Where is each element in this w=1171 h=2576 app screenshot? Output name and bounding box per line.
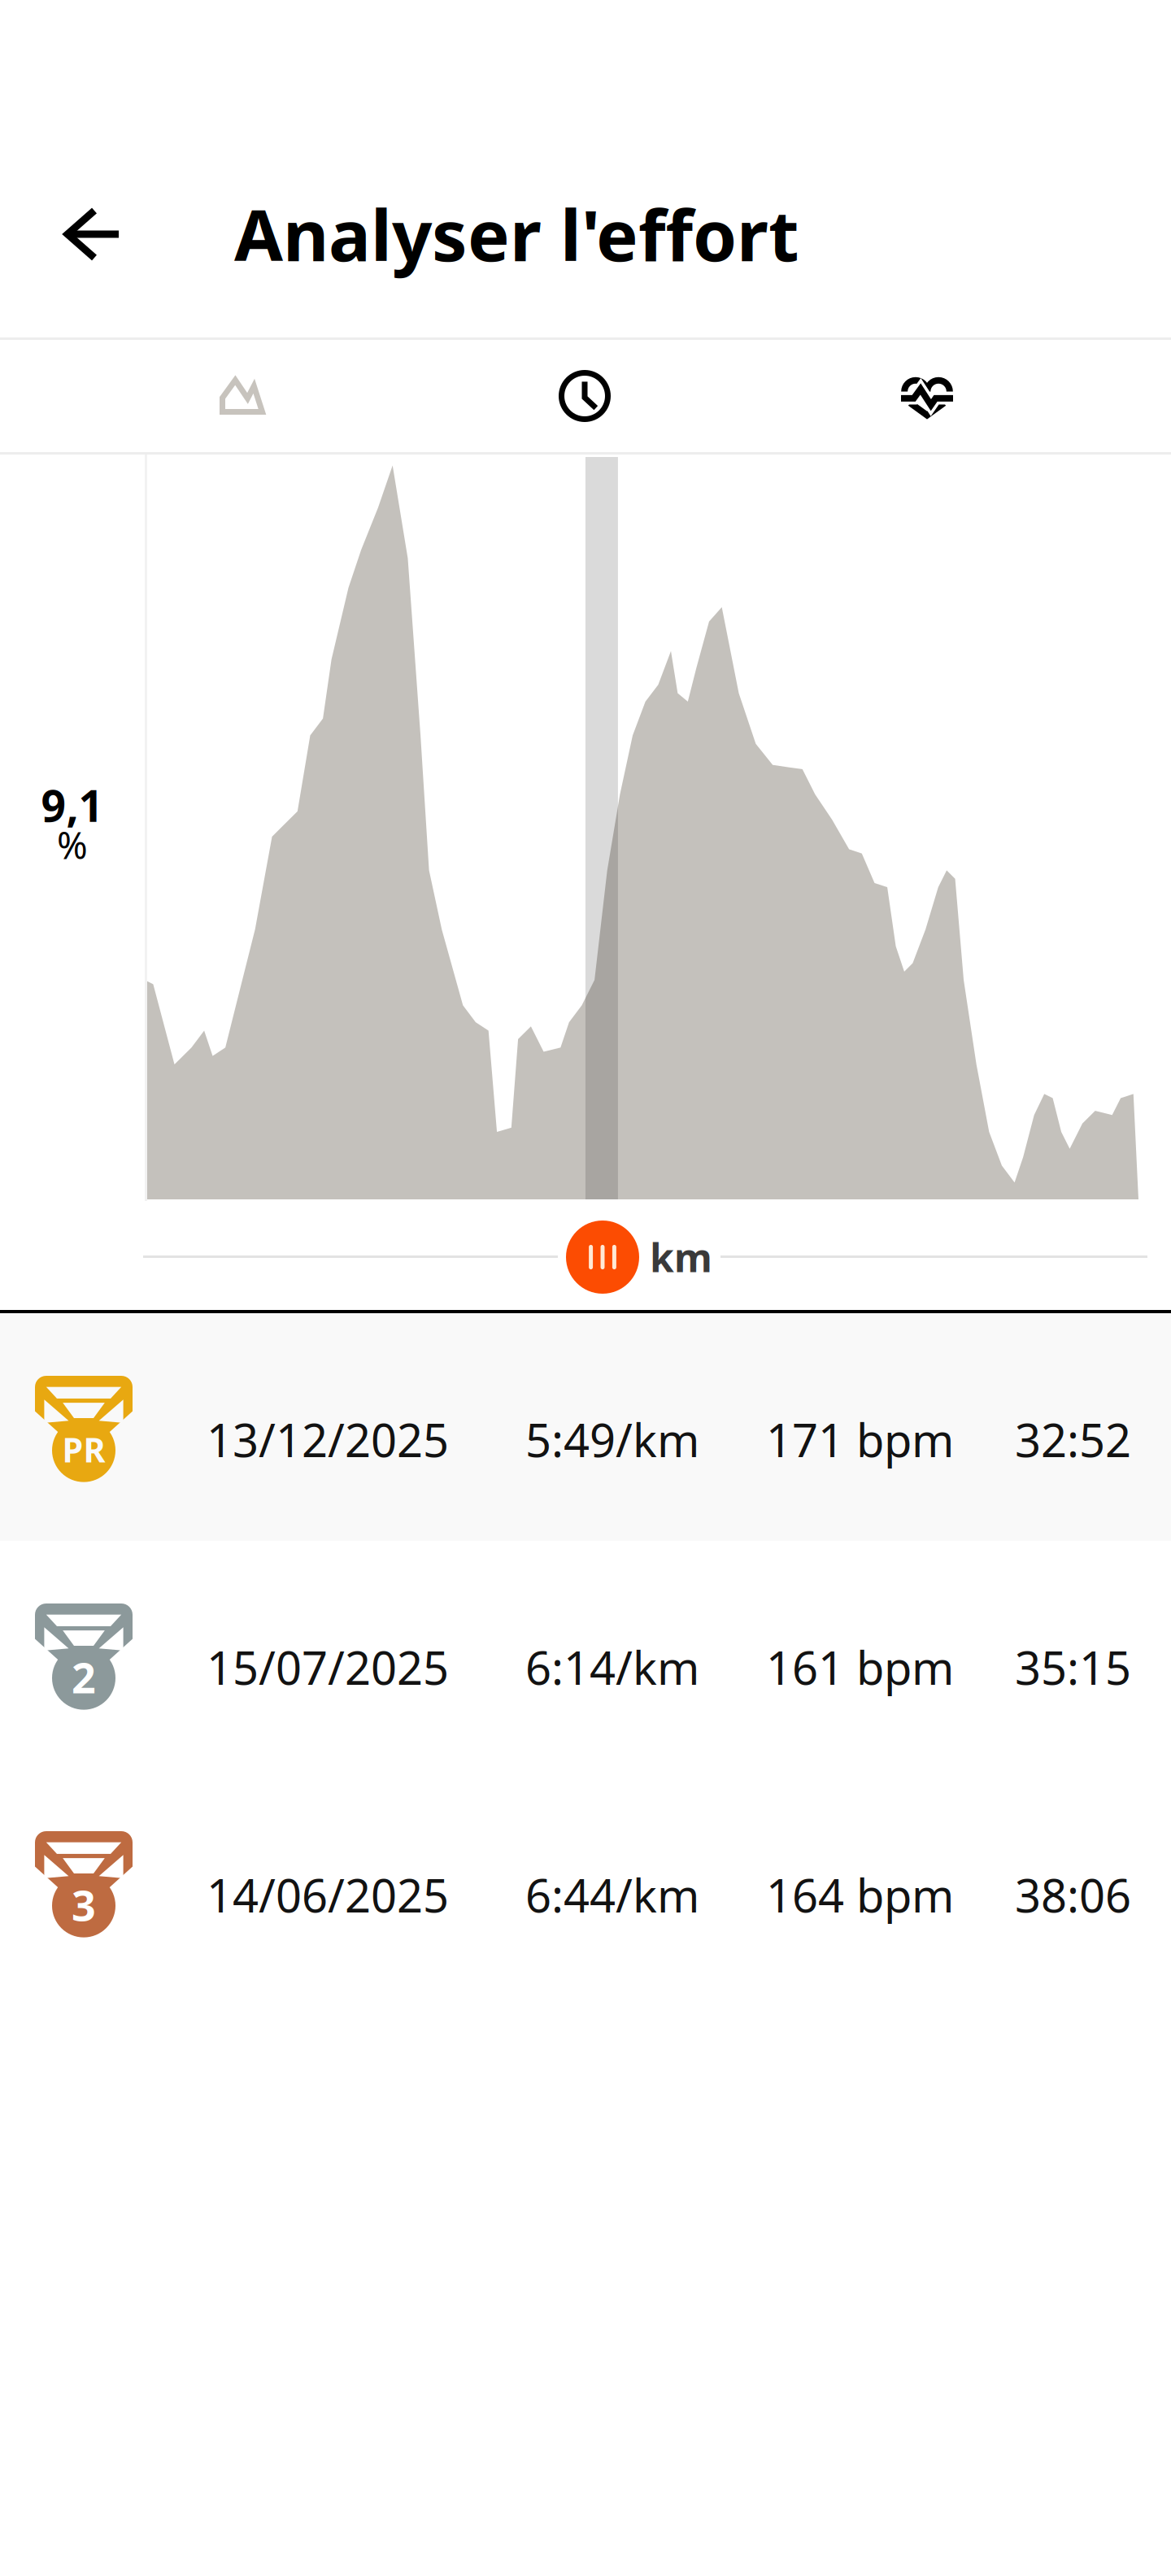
staticText: 35:15 [1015,1637,1131,1697]
button[interactable]: 2 [0,1541,1171,1769]
staticText: km [650,1231,712,1283]
staticText: 13/12/2025 [207,1409,449,1470]
staticText: 164 bpm [766,1865,954,1925]
staticText: 6:44/km [525,1865,699,1925]
staticText: 14/06/2025 [207,1865,449,1925]
button[interactable]: PR [0,1313,1171,1541]
staticText: 6:14/km [525,1637,699,1697]
staticText: 38:06 [1015,1865,1131,1925]
button[interactable]: Back [31,173,153,295]
staticText: Analyser l'effort [234,187,799,281]
staticText: 2 [72,1649,96,1705]
staticText: 161 bpm [766,1637,954,1697]
staticText: 5:49/km [525,1409,699,1470]
staticText: 3 [72,1877,96,1933]
button[interactable]: Heart rate [805,340,1049,452]
staticText: 171 bpm [766,1409,954,1470]
staticText: % [57,820,88,869]
staticText: 15/07/2025 [207,1637,449,1697]
button[interactable]: 3 [0,1769,1171,1996]
staticText: PR [62,1427,105,1472]
button[interactable]: Elevation [120,340,364,452]
button[interactable]: Time [463,340,707,452]
staticText: 9,1 [41,776,104,834]
staticText: 32:52 [1015,1409,1131,1470]
